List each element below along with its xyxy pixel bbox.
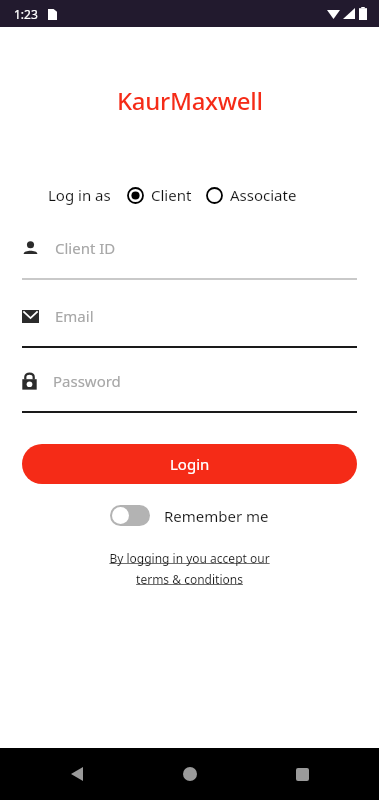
button[interactable]: Password [22, 371, 357, 413]
button[interactable]: Home [173, 757, 207, 791]
other: Email [22, 310, 39, 323]
staticText: By logging in you accept our [109, 550, 270, 566]
staticText: Client [151, 185, 192, 205]
button[interactable]: Associate [206, 185, 297, 205]
staticText: 1:23 [14, 6, 38, 22]
button[interactable]: Back [60, 757, 94, 791]
button[interactable]: Recents [285, 757, 319, 791]
button[interactable]: By logging in you accept our [0, 550, 379, 587]
staticText: Remember me [164, 506, 269, 526]
staticText: Login [170, 454, 210, 474]
staticText: terms & conditions [136, 571, 243, 587]
button[interactable]: Login [22, 444, 357, 484]
staticText: Email [55, 306, 94, 326]
button[interactable]: Email [22, 306, 357, 348]
other: User [22, 240, 39, 257]
staticText: Log in as [48, 185, 111, 205]
staticText: Associate [230, 185, 297, 205]
button[interactable]: Client [127, 185, 192, 205]
staticText: Client ID [55, 238, 116, 258]
button[interactable]: User [22, 238, 357, 280]
button[interactable]: Remember me [110, 505, 269, 526]
staticText: KaurMaxwell [117, 84, 263, 117]
staticText: Password [53, 371, 121, 391]
other: Password [22, 372, 37, 390]
